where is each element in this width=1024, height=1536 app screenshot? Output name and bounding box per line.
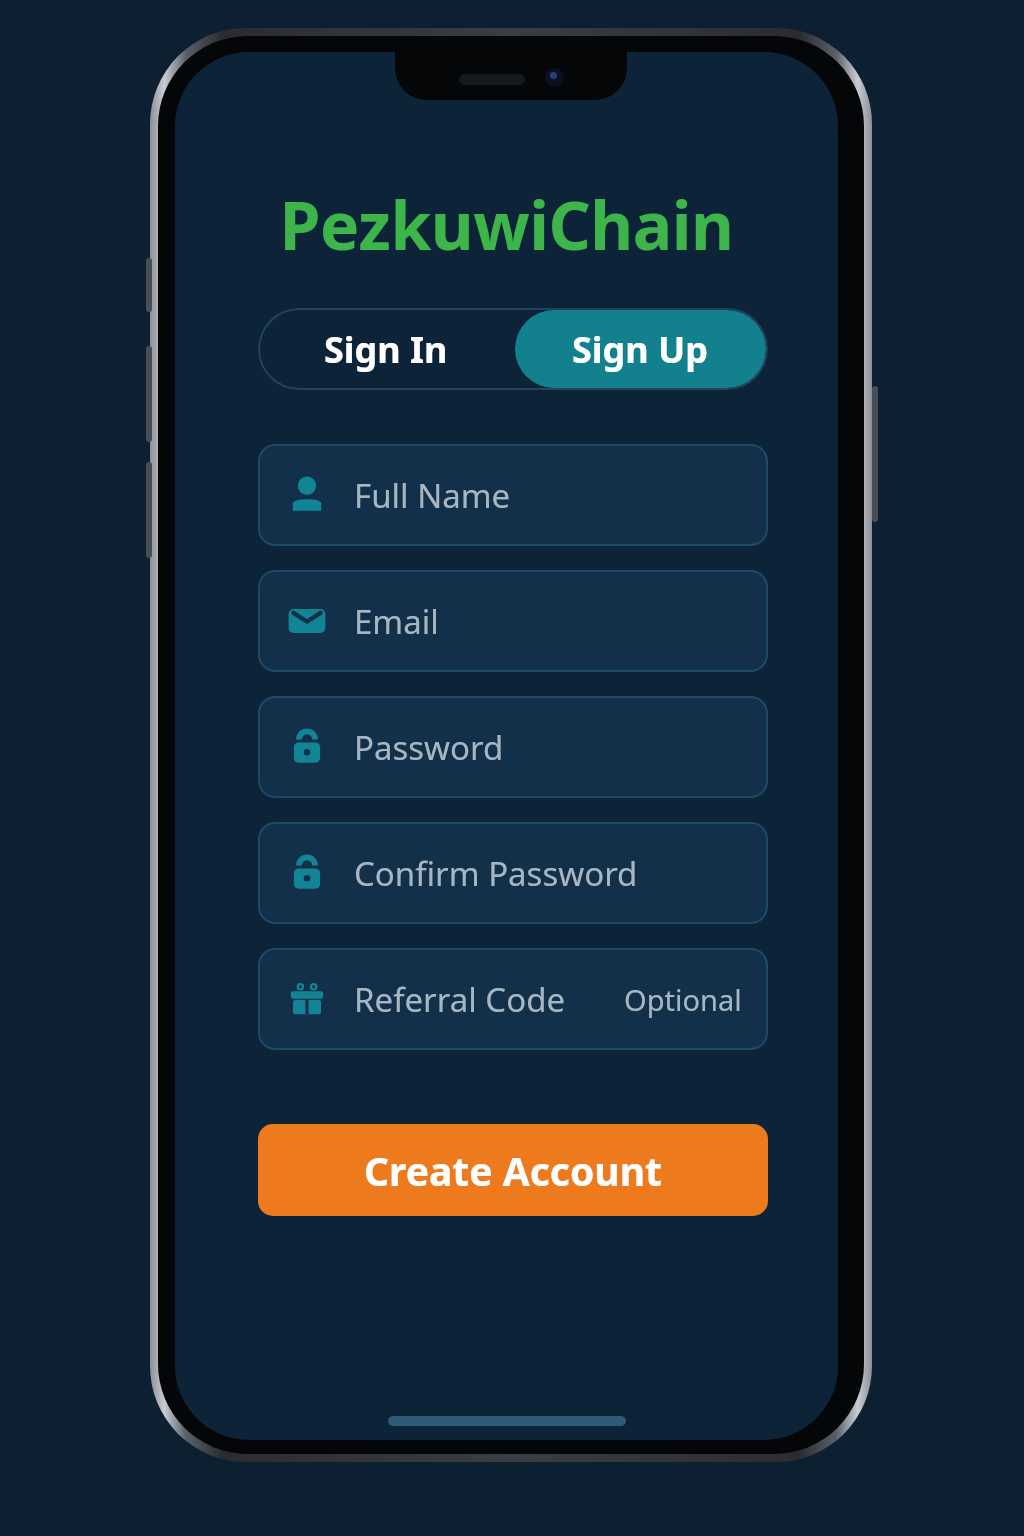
staticText: Sign Up [572,325,709,374]
button[interactable]: Confirm Password [258,822,768,924]
button[interactable]: Email [258,570,768,672]
button[interactable]: Create Account [258,1124,768,1216]
staticText: Full Name [354,473,511,518]
staticText: Password [354,725,504,770]
button[interactable]: Sign Up [515,310,766,388]
staticText: Create Account [364,1144,662,1197]
staticText: Confirm Password [354,851,638,896]
button[interactable]: Password [258,696,768,798]
button[interactable]: Sign In [258,308,513,390]
button[interactable]: Referral Code [258,948,768,1050]
staticText: PezkuwiChain [175,179,838,269]
button[interactable]: Full Name [258,444,768,546]
staticText: Sign In [324,325,448,374]
staticText: Optional [624,980,742,1019]
staticText: Referral Code [354,977,566,1022]
staticText: Email [354,599,439,644]
